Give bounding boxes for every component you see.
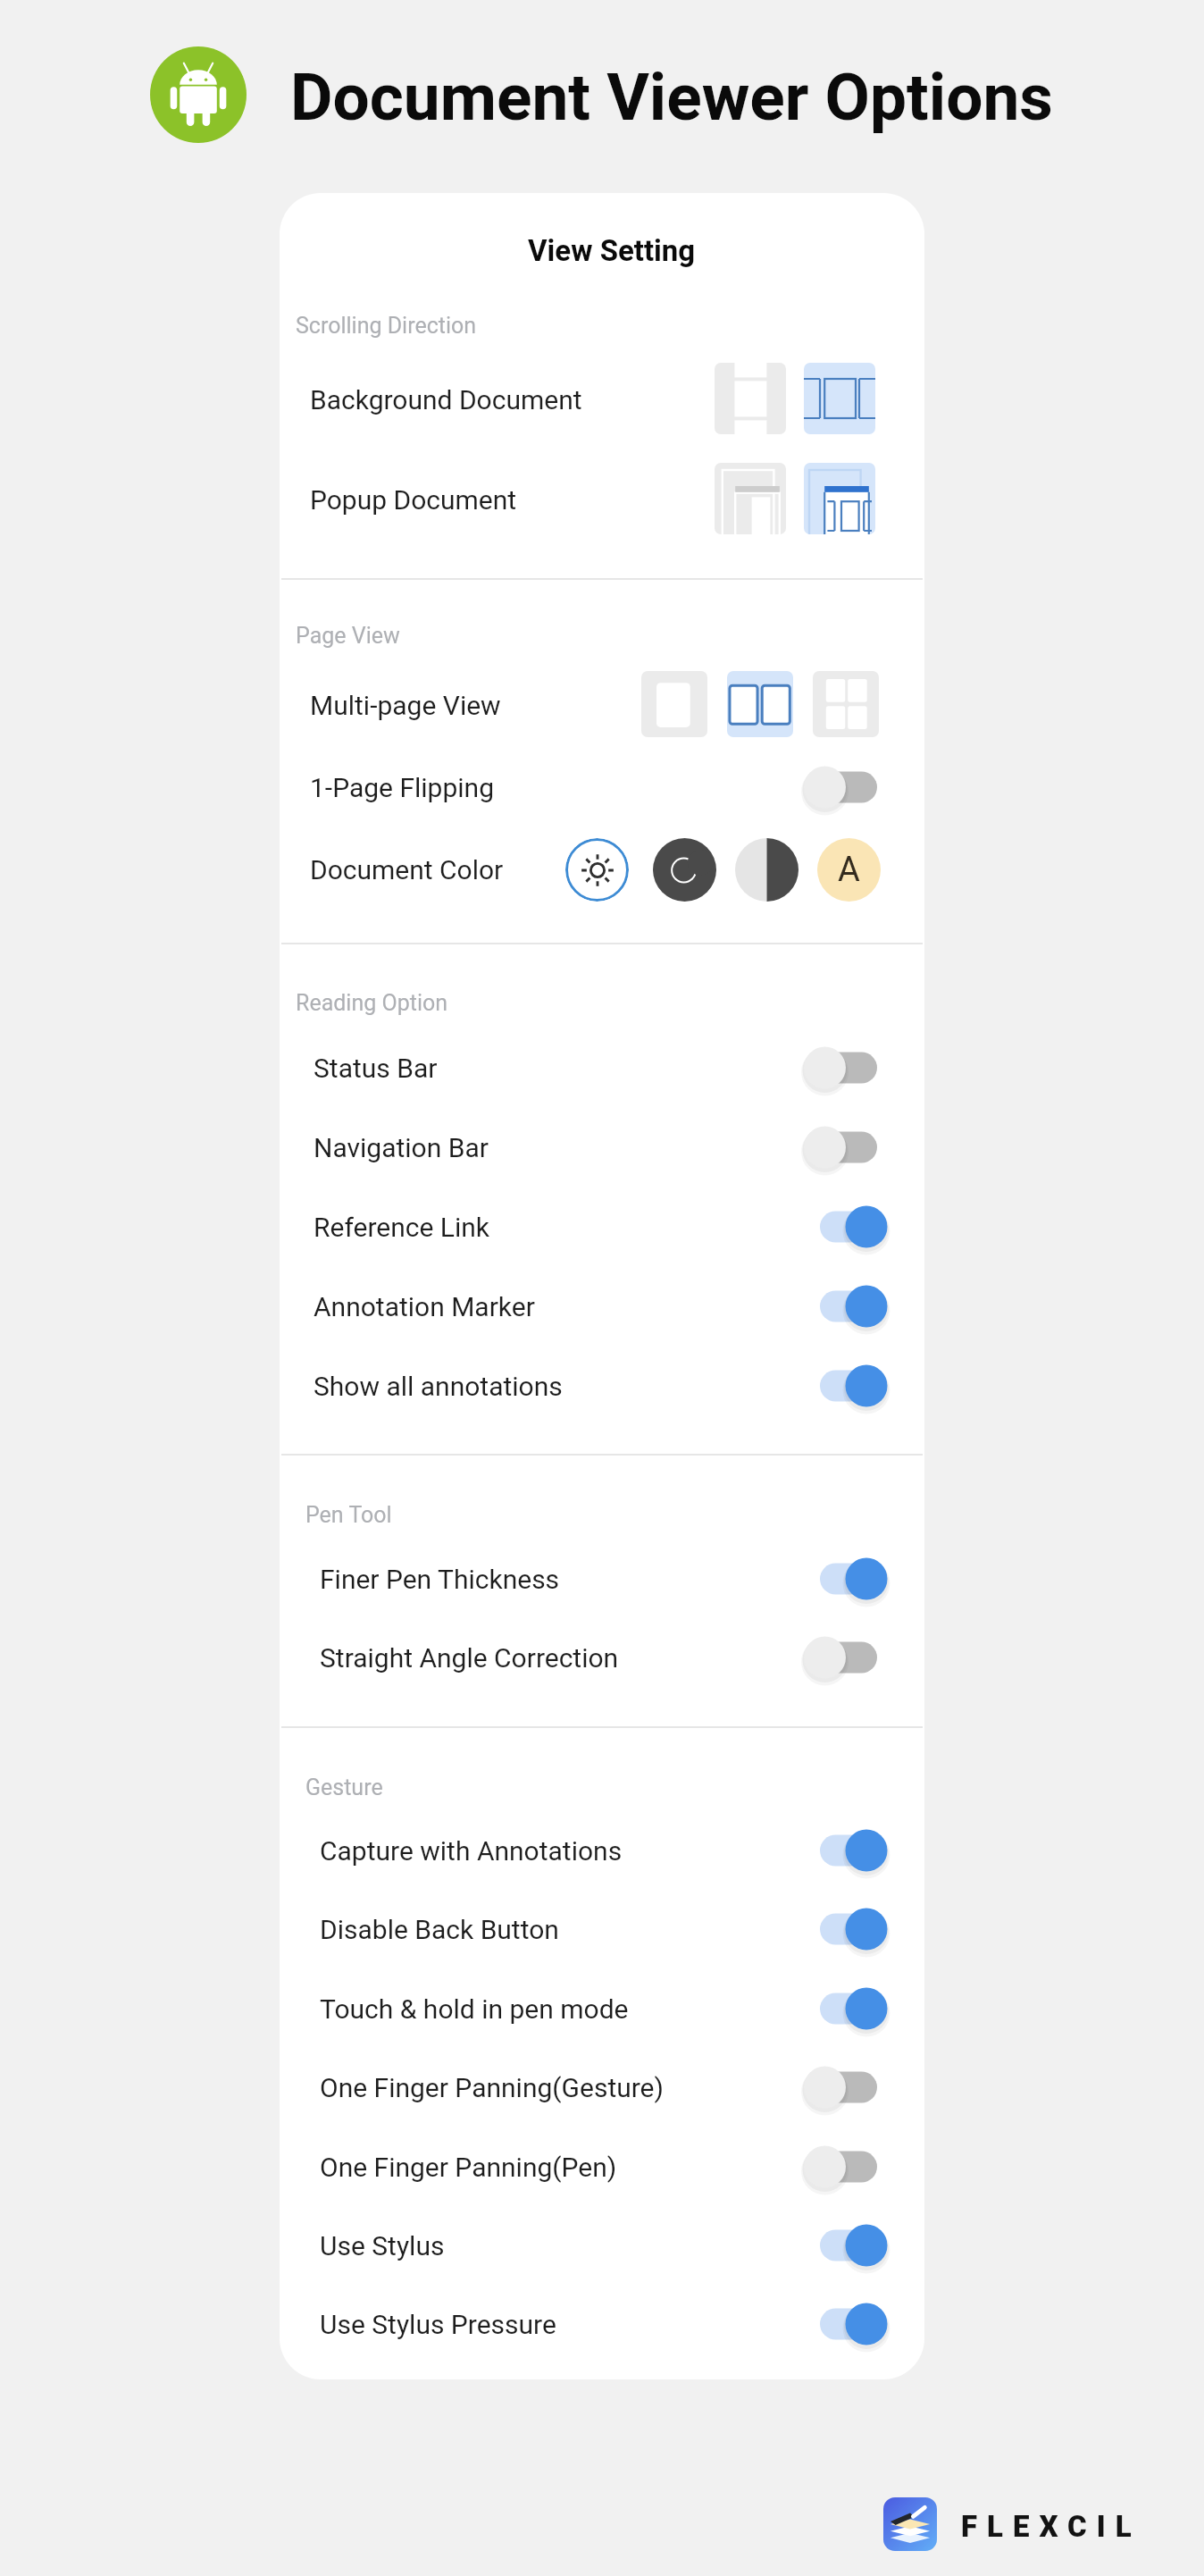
button[interactable]: Navigation Bar (280, 1108, 924, 1187)
button[interactable]: Disable Back Button (280, 1890, 924, 1968)
button[interactable]: Reference Link, on (803, 1203, 888, 1251)
button[interactable]: One Finger Panning(Gesture) (280, 2048, 924, 2127)
button[interactable]: Popup document scrolling direction, vert… (715, 463, 786, 534)
staticText: Pen Tool (305, 1502, 392, 1528)
staticText: Finer Pen Thickness (320, 1564, 560, 1595)
button[interactable]: Status Bar (280, 1028, 924, 1107)
button[interactable]: Disable Back Button, on (803, 1905, 888, 1953)
button[interactable]: One Finger Panning(Pen) (280, 2127, 924, 2206)
button[interactable]: Android (150, 46, 247, 143)
button[interactable]: Reference Link (280, 1187, 924, 1266)
button[interactable]: Multi-page View (280, 666, 924, 744)
button[interactable]: Document Color (280, 830, 924, 909)
staticText: One Finger Panning(Gesture) (320, 2072, 664, 2103)
button[interactable]: Navigation Bar, off (803, 1123, 888, 1171)
button[interactable]: Capture with Annotations, on (803, 1826, 888, 1875)
button[interactable]: Background document scrolling direction,… (715, 363, 786, 434)
staticText: Document Viewer Options (290, 59, 1053, 136)
staticText: Reference Link (314, 1212, 490, 1243)
staticText: Use Stylus Pressure (320, 2309, 556, 2340)
staticText: Reading Option (296, 990, 448, 1016)
staticText: Annotation Marker (314, 1291, 535, 1322)
staticText: 1-Page Flipping (310, 772, 495, 803)
staticText: Document Color (310, 854, 504, 885)
button[interactable]: Capture with Annotations (280, 1811, 924, 1890)
button[interactable]: Popup Document (280, 460, 924, 539)
staticText: Scrolling Direction (296, 313, 477, 339)
button[interactable]: Use Stylus, on (803, 2221, 888, 2270)
button[interactable]: Show all annotations, on (803, 1362, 888, 1410)
staticText: Multi-page View (310, 690, 501, 721)
button[interactable]: Sepia theme (817, 838, 881, 902)
staticText: FLEXCIL (961, 2509, 1141, 2544)
button[interactable]: Use Stylus (280, 2206, 924, 2285)
button[interactable]: Annotation Marker (280, 1267, 924, 1346)
staticText: View Setting (528, 233, 696, 268)
staticText: Gesture (305, 1775, 383, 1800)
button[interactable]: Use Stylus Pressure, on (803, 2300, 888, 2348)
button[interactable]: Dark theme (653, 838, 716, 902)
button[interactable]: Popup document scrolling direction, hori… (804, 463, 875, 534)
staticText: Background Document (310, 384, 582, 415)
button[interactable]: Background document scrolling direction,… (804, 363, 875, 434)
button[interactable]: Finer Pen Thickness (280, 1540, 924, 1618)
staticText: Capture with Annotations (320, 1835, 623, 1867)
button[interactable]: Straight Angle Correction (280, 1618, 924, 1697)
button[interactable]: Single page view (641, 671, 707, 737)
staticText: Popup Document (310, 484, 517, 516)
button[interactable]: Light theme (565, 838, 629, 902)
button[interactable]: 1-Page Flipping (280, 748, 924, 827)
button[interactable]: Straight Angle Correction, off (803, 1633, 888, 1682)
button[interactable]: Show all annotations (280, 1347, 924, 1425)
button[interactable]: Contrast theme (735, 838, 798, 902)
staticText: Touch & hold in pen mode (320, 1993, 629, 2025)
button[interactable]: 1-Page Flipping, off (803, 763, 888, 811)
button[interactable]: Status Bar, off (803, 1044, 888, 1092)
button[interactable]: Flexcil (883, 2497, 937, 2551)
button[interactable]: Two page view (selected) (727, 671, 793, 737)
staticText: Straight Angle Correction (320, 1642, 619, 1674)
staticText: Use Stylus (320, 2230, 445, 2261)
staticText: Disable Back Button (320, 1914, 559, 1945)
button[interactable]: Annotation Marker, on (803, 1282, 888, 1330)
button[interactable]: Finer Pen Thickness, on (803, 1555, 888, 1603)
button[interactable]: One Finger Panning(Gesture), off (803, 2063, 888, 2111)
staticText: Show all annotations (314, 1371, 563, 1402)
button[interactable]: Four page view (813, 671, 879, 737)
staticText: Navigation Bar (314, 1132, 489, 1163)
button[interactable]: Use Stylus Pressure (280, 2285, 924, 2363)
staticText: Page View (296, 623, 400, 649)
button[interactable]: Touch & hold in pen mode (280, 1969, 924, 2048)
button[interactable]: Touch & hold in pen mode, on (803, 1984, 888, 2033)
staticText: A (838, 850, 860, 890)
staticText: One Finger Panning(Pen) (320, 2152, 617, 2183)
staticText: Status Bar (314, 1053, 438, 1084)
button[interactable]: One Finger Panning(Pen), off (803, 2143, 888, 2191)
button[interactable]: Background Document (280, 360, 924, 439)
